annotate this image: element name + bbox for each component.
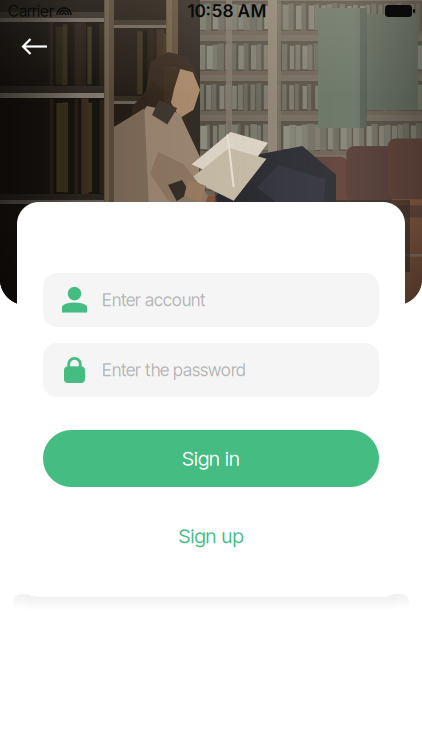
staticText: Enter the password (102, 359, 246, 380)
button[interactable]: Back (9, 25, 61, 68)
staticText: Enter account (102, 289, 205, 310)
button[interactable]: Sign up (43, 514, 379, 558)
staticText: Sign in (182, 446, 240, 471)
staticText: Carrier (8, 1, 54, 21)
staticText: 10:58 AM (187, 0, 266, 21)
staticText: Sign up (178, 524, 243, 548)
button[interactable]: Sign in (43, 430, 379, 487)
